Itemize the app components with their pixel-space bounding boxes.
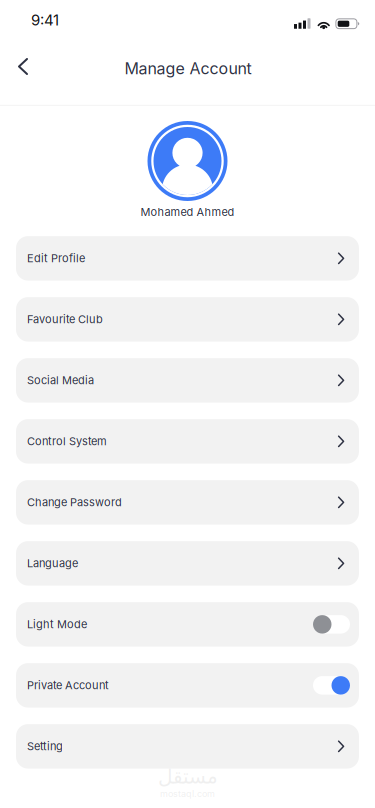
button[interactable]: Favourite Club: [16, 297, 359, 342]
staticText: Private Account: [27, 679, 109, 692]
button[interactable]: Change Password: [16, 480, 359, 525]
button[interactable]: Private Account: [16, 663, 359, 708]
button[interactable]: Light Mode: [16, 602, 359, 647]
button[interactable]: Back: [0, 44, 46, 88]
staticText: مستقل: [157, 765, 217, 788]
button[interactable]: Control System: [16, 419, 359, 464]
staticText: Manage Account: [124, 59, 251, 78]
staticText: Mohamed Ahmed: [140, 205, 234, 219]
button[interactable]: Social Media: [16, 358, 359, 403]
staticText: Social Media: [27, 374, 94, 387]
button[interactable]: Language: [16, 541, 359, 586]
button[interactable]: Setting: [16, 724, 359, 769]
staticText: Light Mode: [27, 618, 87, 631]
staticText: 9:41: [31, 11, 59, 29]
staticText: Control System: [27, 435, 107, 448]
staticText: Favourite Club: [27, 313, 103, 326]
staticText: Change Password: [27, 496, 122, 509]
button[interactable]: Edit Profile: [16, 236, 359, 281]
staticText: Language: [27, 557, 78, 570]
staticText: Setting: [27, 740, 63, 753]
staticText: Edit Profile: [27, 252, 85, 265]
staticText: mostaql.com: [160, 788, 215, 799]
